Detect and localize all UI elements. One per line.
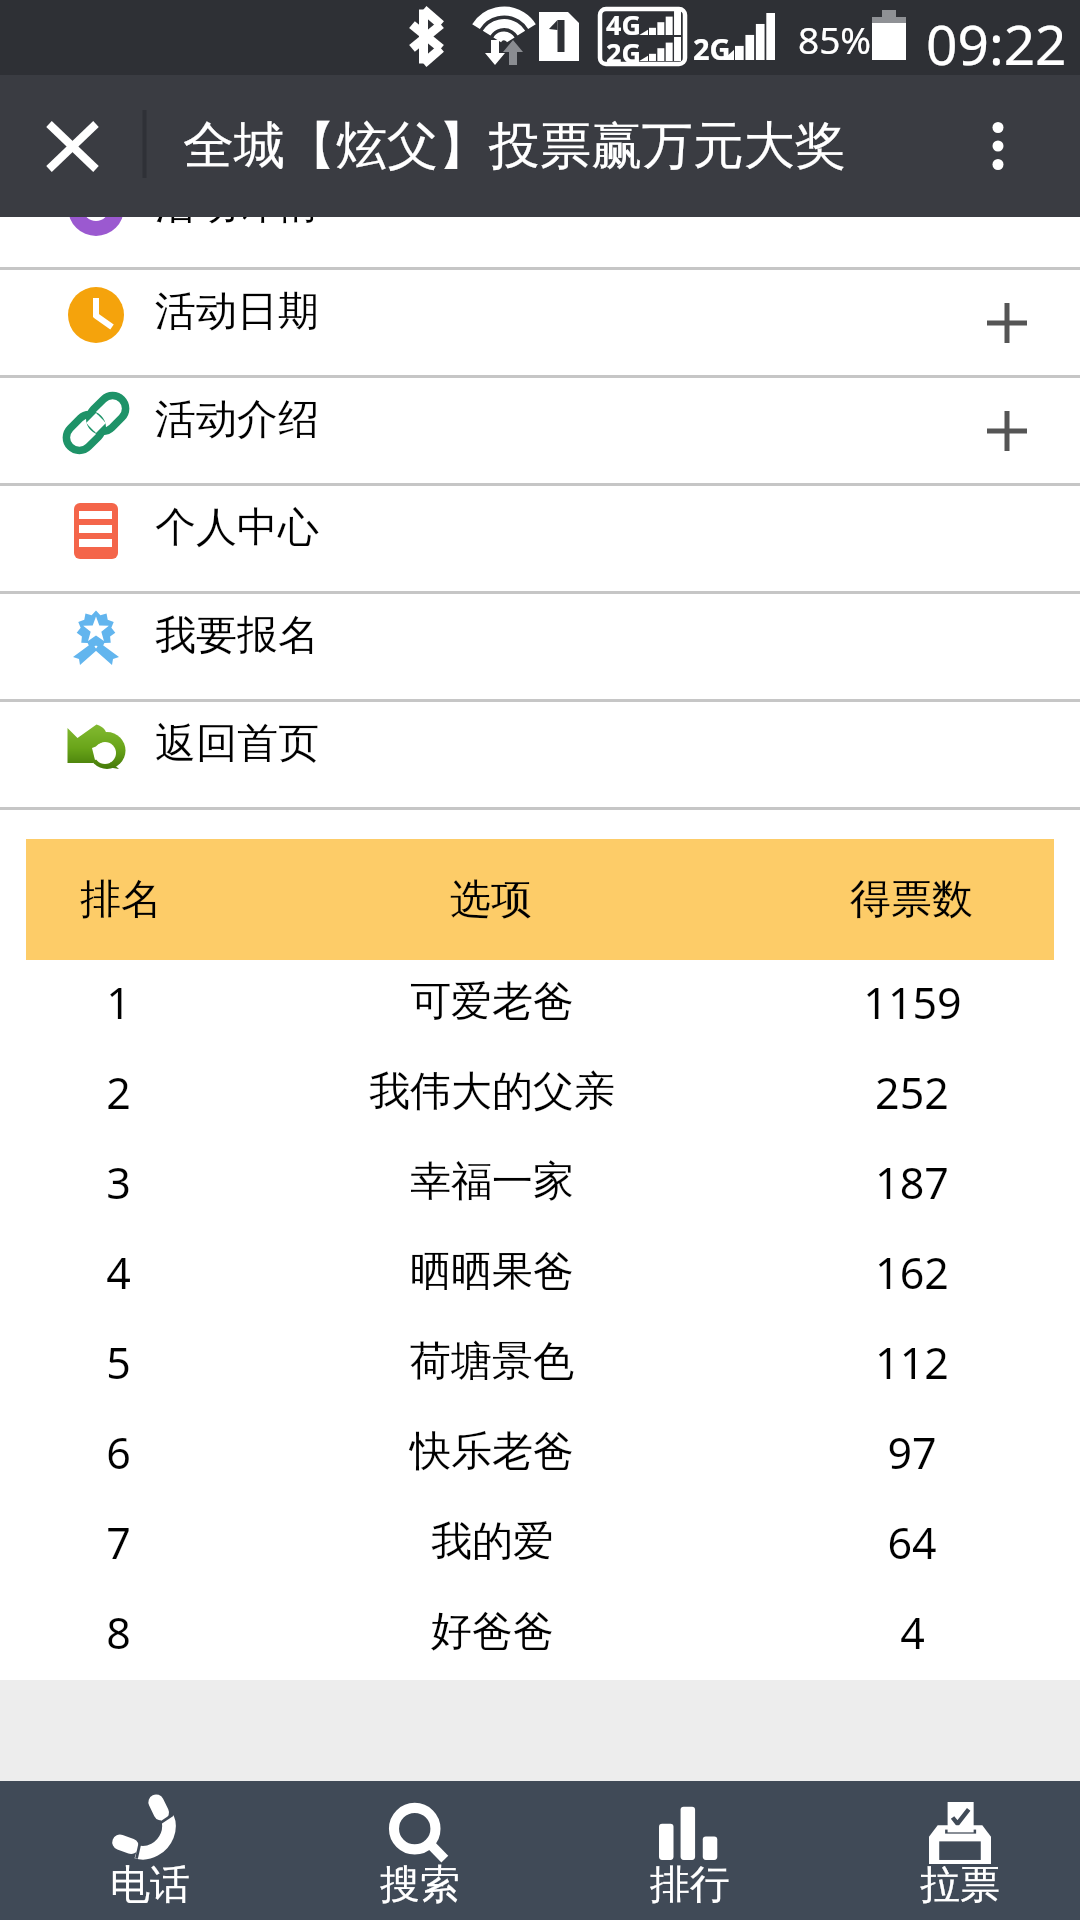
staticText: 2 — [106, 1063, 131, 1122]
staticText: 85% — [798, 14, 872, 64]
staticText: 4G — [606, 6, 641, 43]
staticText: 排名 — [80, 874, 162, 926]
staticText: 活动介绍 — [155, 394, 319, 446]
staticText: 1159 — [863, 973, 962, 1032]
staticText: 4 — [900, 1603, 925, 1662]
button[interactable]: More options — [911, 75, 1079, 217]
staticText: 1 — [106, 973, 131, 1032]
button[interactable]: 排行 — [555, 1781, 825, 1920]
staticText: 全城【炫父】投票赢万元大奖 — [183, 114, 846, 178]
staticText: 187 — [875, 1153, 949, 1212]
staticText: 6 — [106, 1423, 131, 1482]
staticText: 我要报名 — [155, 610, 319, 662]
staticText: 搜索 — [380, 1859, 460, 1909]
staticText: 3 — [106, 1153, 131, 1212]
staticText: 荷塘景色 — [410, 1336, 574, 1388]
staticText: 4 — [106, 1243, 131, 1302]
button[interactable]: 搜索 — [285, 1781, 555, 1920]
staticText: 活动详情 — [155, 179, 319, 231]
staticText: 162 — [875, 1243, 949, 1302]
staticText: 排行 — [650, 1859, 730, 1909]
staticText: 97 — [887, 1423, 937, 1482]
button[interactable]: 返回首页 — [0, 702, 1080, 807]
staticText: 活动日期 — [155, 286, 319, 338]
button[interactable]: 活动日期 — [0, 270, 1080, 375]
staticText: 电话 — [110, 1859, 190, 1909]
button[interactable]: 我要报名 — [0, 594, 1080, 699]
staticText: 选项 — [450, 874, 532, 926]
staticText: 2G — [606, 34, 641, 71]
button[interactable]: 活动介绍 — [0, 378, 1080, 483]
staticText: 可爱老爸 — [410, 976, 574, 1028]
staticText: 我的爱 — [431, 1516, 554, 1568]
staticText: 晒晒果爸 — [410, 1246, 574, 1298]
button[interactable]: 个人中心 — [0, 486, 1080, 591]
button[interactable]: 拉票 — [825, 1781, 1080, 1920]
staticText: 252 — [875, 1063, 949, 1122]
staticText: 112 — [875, 1333, 949, 1392]
staticText: 2G — [693, 29, 731, 68]
staticText: 5 — [106, 1333, 131, 1392]
staticText: 快乐老爸 — [410, 1426, 574, 1478]
staticText: 8 — [106, 1603, 131, 1662]
button[interactable]: Close — [0, 75, 144, 217]
staticText: 返回首页 — [155, 718, 319, 770]
staticText: 我伟大的父亲 — [369, 1066, 615, 1118]
staticText: 得票数 — [850, 874, 973, 926]
staticText: 好爸爸 — [431, 1606, 554, 1658]
staticText: 个人中心 — [155, 502, 319, 554]
staticText: 拉票 — [920, 1859, 1000, 1909]
staticText: 09:22 — [926, 6, 1067, 81]
button[interactable]: 电话 — [15, 1781, 285, 1920]
staticText: 64 — [887, 1513, 937, 1572]
staticText: 幸福一家 — [410, 1156, 574, 1208]
button[interactable]: 活动详情 — [0, 163, 1080, 268]
staticText: 7 — [106, 1513, 131, 1572]
